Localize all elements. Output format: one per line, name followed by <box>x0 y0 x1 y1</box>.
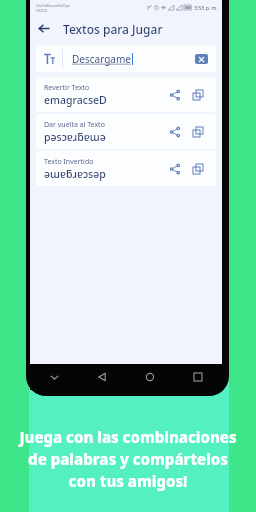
button[interactable]: Copy <box>188 122 208 142</box>
staticText: OK)CSL <box>36 8 48 13</box>
staticText: Texto Invertido <box>44 157 94 167</box>
button[interactable]: Recents <box>174 364 222 390</box>
button[interactable]: Hide keyboard <box>30 364 78 390</box>
button[interactable]: Text format <box>36 45 62 72</box>
button[interactable]: Share <box>165 122 185 142</box>
button[interactable]: Texto Invertido <box>36 151 216 186</box>
staticText: UsaTuMascarilla(Tipo <box>36 3 70 8</box>
staticText: ǝɯɐƃɹɐɔsǝp <box>44 167 106 181</box>
button[interactable]: Share <box>165 159 185 179</box>
staticText: Juega con las combinaciones de palabras … <box>0 427 256 492</box>
staticText: Dar vuelta al Texto <box>44 120 105 130</box>
button[interactable]: Copy <box>188 159 208 179</box>
button[interactable]: Home <box>126 364 174 390</box>
button[interactable]: Clear <box>186 45 216 72</box>
button[interactable]: Dar vuelta al Texto <box>36 114 216 149</box>
staticText: pəsɔɐɹƃɐɯǝ <box>44 130 106 144</box>
button[interactable]: Back <box>30 15 57 42</box>
staticText: 3:53 p. m. <box>194 4 218 11</box>
staticText: Descargame <box>72 52 131 66</box>
button[interactable]: Revertir Texto <box>36 77 216 112</box>
staticText: Revertir Texto <box>44 83 90 93</box>
button[interactable]: Copy <box>188 85 208 105</box>
button[interactable]: Descargame <box>72 45 186 72</box>
staticText: emagracseD <box>44 93 107 107</box>
button[interactable]: Back <box>78 364 126 390</box>
staticText: Textos para Jugar <box>63 21 163 37</box>
button[interactable]: Share <box>165 85 185 105</box>
